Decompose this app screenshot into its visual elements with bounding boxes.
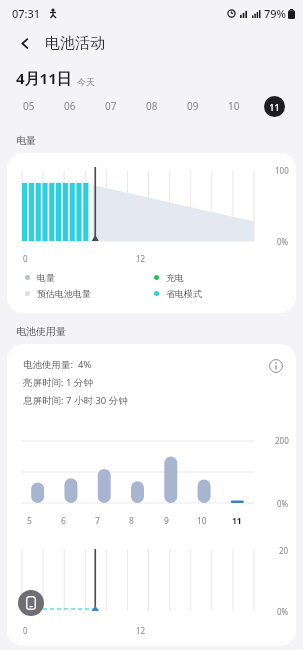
staticText: 05 [23,99,35,113]
button[interactable]: 05 [8,88,49,124]
staticText: 06 [64,99,76,113]
staticText: 充电 [166,272,184,283]
staticText: 省电模式 [166,288,202,299]
staticText: 4月11日 [16,68,72,88]
staticText: 200 [275,435,289,446]
button[interactable]: 09 [172,88,213,124]
staticText: 6 [61,515,66,527]
button[interactable]: 10 [213,88,254,124]
button[interactable]: 08 [131,88,172,124]
staticText: 09 [187,99,199,113]
staticText: 100 [275,165,289,176]
staticText: 12 [136,253,146,264]
staticText: 07:31 [12,6,41,21]
staticText: 20 [279,545,289,556]
staticText: 11 [269,101,280,113]
staticText: 0% [277,498,289,509]
staticText: 电量 [37,272,55,283]
button[interactable]: 07 [90,88,131,124]
staticText: 5 [27,515,32,527]
staticText: 10 [228,99,240,113]
staticText: 电池活动 [45,34,105,53]
staticText: 79% [264,6,286,21]
staticText: 亮屏时间: 1 分钟 [23,376,93,389]
staticText: 0% [277,606,289,617]
staticText: 11 [232,515,242,527]
staticText: 7 [95,515,100,527]
staticText: 8 [129,515,134,527]
staticText: 12 [136,625,146,636]
staticText: 9 [164,515,169,527]
button[interactable]: 11 [254,88,295,124]
staticText: 07 [105,99,117,113]
staticText: 预估电池电量 [37,288,91,299]
staticText: 电量 [16,134,36,147]
staticText: 0% [277,236,289,247]
staticText: 电池使用量: 4% [23,358,92,371]
staticText: 0 [23,625,28,636]
button[interactable]: Info [266,356,286,376]
staticText: 息屏时间: 7 小时 30 分钟 [23,394,128,407]
staticText: 0 [23,253,28,264]
staticText: 今天 [77,76,95,87]
staticText: 电池使用量 [16,325,66,338]
staticText: 08 [146,99,158,113]
button[interactable]: 06 [49,88,90,124]
button[interactable]: Back [12,30,38,56]
staticText: 10 [197,515,207,527]
